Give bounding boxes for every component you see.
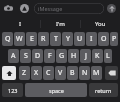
staticText: M xyxy=(93,68,100,78)
staticText: I xyxy=(90,34,93,44)
staticText: K xyxy=(95,51,100,61)
button[interactable]: iMessage xyxy=(34,3,104,14)
staticText: U xyxy=(77,34,83,44)
button[interactable]: I'm xyxy=(41,16,80,31)
button[interactable]: K xyxy=(92,49,103,63)
staticText: space xyxy=(49,87,64,94)
button[interactable]: C xyxy=(43,66,54,80)
staticText: I'm xyxy=(56,20,65,28)
button[interactable]: Camera xyxy=(2,2,15,15)
staticText: O xyxy=(101,34,107,44)
staticText: S xyxy=(24,51,28,61)
button[interactable]: Send xyxy=(107,4,116,13)
staticText: You xyxy=(95,20,106,28)
staticText: W xyxy=(16,34,23,44)
staticText: R xyxy=(41,34,46,44)
staticText: iMessage xyxy=(38,5,63,12)
button[interactable]: V xyxy=(55,66,66,80)
staticText: C xyxy=(46,68,51,78)
button[interactable]: F xyxy=(44,49,55,63)
button[interactable]: Backspace xyxy=(105,66,118,80)
staticText: B xyxy=(70,68,75,78)
staticText: L xyxy=(106,51,110,61)
staticText: F xyxy=(48,51,52,61)
button[interactable]: R xyxy=(38,32,49,46)
button[interactable]: G xyxy=(56,49,67,63)
button[interactable]: W xyxy=(14,32,25,46)
button[interactable]: space xyxy=(25,83,87,97)
button[interactable]: I xyxy=(0,16,40,31)
staticText: 123 xyxy=(8,87,18,94)
button[interactable]: M xyxy=(91,66,102,80)
button[interactable]: Y xyxy=(62,32,73,46)
button[interactable]: A xyxy=(8,49,19,63)
button[interactable]: P xyxy=(110,32,118,46)
button[interactable]: Q xyxy=(2,32,13,46)
staticText: Y xyxy=(66,34,70,44)
staticText: D xyxy=(35,51,41,61)
button[interactable]: E xyxy=(26,32,37,46)
button[interactable]: D xyxy=(32,49,43,63)
button[interactable]: Shift xyxy=(2,66,16,80)
button[interactable]: O xyxy=(98,32,109,46)
staticText: return xyxy=(95,87,112,94)
button[interactable]: You xyxy=(81,16,120,31)
button[interactable]: X xyxy=(31,66,42,80)
staticText: G xyxy=(59,51,65,61)
staticText: P xyxy=(112,34,117,44)
staticText: V xyxy=(58,68,63,78)
button[interactable]: S xyxy=(20,49,31,63)
staticText: X xyxy=(34,68,39,78)
button[interactable]: return xyxy=(89,83,118,97)
button[interactable]: H xyxy=(68,49,79,63)
button[interactable]: I xyxy=(86,32,97,46)
staticText: Z xyxy=(22,68,27,78)
button[interactable]: U xyxy=(74,32,85,46)
button[interactable]: N xyxy=(79,66,90,80)
staticText: J xyxy=(85,51,87,61)
staticText: E xyxy=(30,34,34,44)
button[interactable]: 123 xyxy=(2,83,23,97)
staticText: I xyxy=(19,20,22,28)
staticText: T xyxy=(54,34,58,44)
button[interactable]: Apps xyxy=(18,2,31,15)
button[interactable]: Z xyxy=(19,66,30,80)
button[interactable]: J xyxy=(80,49,91,63)
staticText: H xyxy=(71,51,77,61)
staticText: N xyxy=(82,68,88,78)
staticText: Q xyxy=(5,34,11,44)
button[interactable]: L xyxy=(104,49,112,63)
button[interactable]: B xyxy=(67,66,78,80)
button[interactable]: T xyxy=(50,32,61,46)
staticText: A xyxy=(11,51,16,61)
